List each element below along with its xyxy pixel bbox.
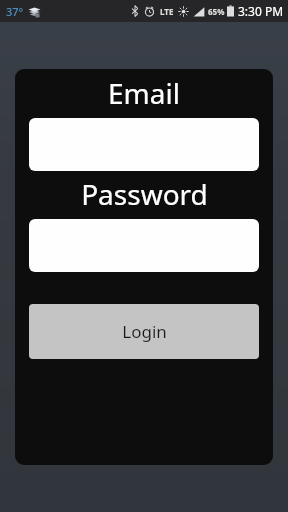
button[interactable]: Login <box>29 304 259 359</box>
staticText: Login <box>122 320 167 343</box>
button[interactable]: Text input field <box>29 219 259 272</box>
staticText: 37° <box>6 4 24 19</box>
staticText: 3:30 PM <box>238 3 284 19</box>
button[interactable]: Text input field <box>29 118 259 171</box>
staticText: Password <box>81 175 208 213</box>
staticText: Email <box>108 74 180 112</box>
staticText: 65% <box>208 6 225 17</box>
staticText: LTE <box>160 6 174 17</box>
